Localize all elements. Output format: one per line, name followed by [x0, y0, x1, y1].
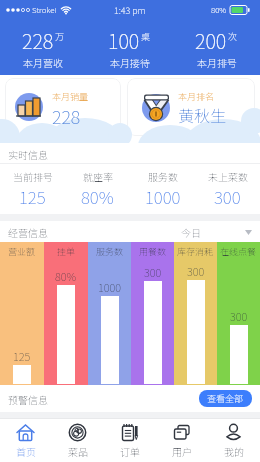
staticText: 本月接待: [110, 55, 150, 69]
button[interactable]: 库存消耗: [174, 242, 217, 385]
staticText: 首页: [16, 444, 36, 458]
button[interactable]: 就座率: [65, 164, 130, 214]
staticText: 服务数: [148, 169, 178, 183]
staticText: 228: [22, 26, 54, 55]
button[interactable]: 营业额: [0, 242, 44, 385]
button[interactable]: 挂单: [44, 242, 88, 385]
staticText: 125: [19, 184, 46, 209]
staticText: 80%: [211, 4, 227, 16]
staticText: 订单: [120, 444, 140, 458]
button[interactable]: 服务数: [88, 242, 131, 385]
staticText: 本月排号: [197, 55, 237, 69]
button[interactable]: 200: [173, 20, 260, 75]
button[interactable]: [127, 78, 255, 136]
button[interactable]: 在线点餐: [217, 242, 260, 385]
staticText: 1000: [98, 279, 121, 295]
button[interactable]: 100: [86, 20, 173, 75]
staticText: 在线点餐: [220, 245, 257, 258]
staticText: 1:43 pm: [114, 4, 146, 17]
button[interactable]: 服务数: [130, 164, 195, 214]
staticText: 100: [108, 26, 140, 55]
staticText: 本月排名: [178, 90, 215, 103]
staticText: 挂单: [57, 245, 76, 258]
staticText: 当前排号: [13, 169, 53, 183]
staticText: 菜品: [68, 444, 88, 458]
staticText: 万: [55, 30, 65, 43]
staticText: 300: [187, 263, 205, 279]
staticText: 查看全部: [207, 392, 244, 405]
staticText: 黄秋生: [178, 103, 227, 126]
staticText: 次: [228, 30, 238, 43]
button[interactable]: 菜品: [52, 419, 104, 462]
button[interactable]: 当前排号: [0, 164, 65, 214]
staticText: 80%: [55, 268, 77, 284]
button[interactable]: 用户: [156, 419, 208, 462]
staticText: 1000: [145, 184, 181, 209]
button[interactable]: 未上菜数: [195, 164, 260, 214]
staticText: 80%: [81, 184, 114, 209]
staticText: 桌: [141, 30, 151, 43]
button[interactable]: 首页: [0, 419, 52, 462]
button[interactable]: 我的: [208, 419, 260, 462]
staticText: 库存消耗: [177, 245, 214, 258]
staticText: 本月营收: [23, 55, 63, 69]
staticText: 实时信息: [8, 147, 48, 161]
button[interactable]: 今日: [181, 225, 252, 239]
staticText: 今日: [181, 225, 201, 239]
staticText: 用餐数: [139, 245, 167, 258]
staticText: 服务数: [96, 245, 124, 258]
button[interactable]: 用餐数: [131, 242, 174, 385]
button[interactable]: 订单: [104, 419, 156, 462]
button[interactable]: 228: [0, 20, 86, 75]
staticText: Strokei: [32, 4, 57, 16]
staticText: 300: [230, 308, 248, 324]
staticText: 300: [144, 264, 162, 280]
staticText: 我的: [224, 444, 244, 458]
staticText: 就座率: [83, 169, 113, 183]
staticText: 本月销量: [52, 90, 89, 103]
staticText: 125: [13, 348, 31, 364]
staticText: 预警信息: [8, 392, 48, 406]
staticText: 228: [52, 103, 81, 129]
staticText: 300: [214, 184, 241, 209]
staticText: 用户: [172, 444, 192, 458]
staticText: 营业额: [8, 245, 36, 258]
staticText: 200: [195, 26, 227, 55]
button[interactable]: [5, 78, 121, 136]
staticText: 经营信息: [8, 225, 48, 239]
button[interactable]: 查看全部: [199, 390, 252, 407]
staticText: 未上菜数: [208, 169, 248, 183]
